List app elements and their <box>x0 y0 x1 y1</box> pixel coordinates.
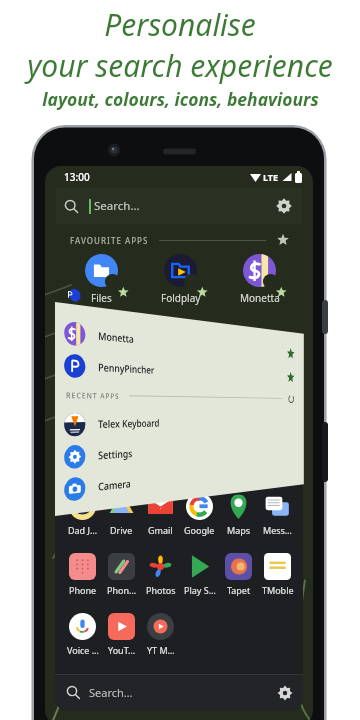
button[interactable]: PennyPincher <box>55 348 304 389</box>
staticText: YouT… <box>108 644 136 656</box>
staticText: Voice … <box>67 644 99 656</box>
button[interactable]: Play S… <box>180 553 219 596</box>
staticText: Settings <box>98 446 132 462</box>
button[interactable]: YouT… <box>102 613 141 656</box>
button[interactable]: Monetta <box>55 315 304 366</box>
button[interactable]: Phon… <box>102 553 141 596</box>
staticText: Photos <box>146 584 176 596</box>
button[interactable]: Google <box>180 493 219 536</box>
staticText: Search… <box>89 685 133 700</box>
button[interactable]: Telex Keyboard <box>55 408 304 441</box>
staticText: Phon… <box>107 584 137 596</box>
staticText: YT M… <box>147 644 175 656</box>
staticText: Phone <box>69 584 97 596</box>
button[interactable]: Search… <box>55 674 303 711</box>
staticText: Dad J… <box>68 524 98 536</box>
staticText: Maps <box>227 524 251 536</box>
button[interactable]: Gmail <box>141 493 180 536</box>
button[interactable]: TMoble <box>258 553 297 596</box>
button[interactable]: Maps <box>219 493 258 536</box>
button[interactable]: Voice … <box>63 613 102 656</box>
other: Refresh <box>288 394 294 404</box>
staticText: Monetta <box>98 328 134 346</box>
staticText: PennyPincher <box>98 360 155 376</box>
staticText: LTE <box>263 171 279 183</box>
button[interactable]: Foldplay <box>141 254 220 305</box>
staticText: Camera <box>98 476 131 493</box>
button[interactable]: Search… <box>56 188 302 224</box>
staticText: Foldplay <box>161 291 201 305</box>
staticText: Telex Keyboard <box>98 416 160 431</box>
button[interactable]: Monetta <box>220 254 299 305</box>
staticText: layout, colours, icons, behaviours <box>42 87 319 111</box>
staticText: Play S… <box>184 584 216 596</box>
staticText: Files <box>91 291 112 305</box>
staticText: FAVOURITE APPS <box>70 235 149 246</box>
button[interactable]: Search settings <box>275 197 293 215</box>
staticText: Tapet <box>227 584 251 596</box>
button[interactable]: YT M… <box>141 613 180 656</box>
button[interactable]: Phone <box>63 553 102 596</box>
staticText: Drive <box>110 524 133 536</box>
button[interactable]: Dad J… <box>63 493 102 536</box>
button[interactable]: Favourites <box>277 234 289 246</box>
staticText: your search experience <box>27 45 333 86</box>
button[interactable]: Tapet <box>219 553 258 596</box>
button[interactable]: Photos <box>141 553 180 596</box>
button[interactable]: Mess… <box>258 493 297 536</box>
button[interactable]: Settings <box>276 684 294 702</box>
button[interactable]: Drive <box>102 493 141 536</box>
button[interactable]: Camera <box>55 455 304 507</box>
staticText: Gmail <box>148 524 173 536</box>
staticText: 13:00 <box>64 170 90 184</box>
staticText: TMoble <box>262 584 294 596</box>
staticText: Search… <box>94 198 140 214</box>
staticText: Google <box>184 524 215 536</box>
staticText: Mess… <box>263 524 292 536</box>
staticText: Personalise <box>104 4 256 45</box>
staticText: Monetta <box>240 291 280 305</box>
button[interactable]: Settings <box>55 431 304 474</box>
staticText: RECENT APPS <box>66 389 120 401</box>
button[interactable]: Files <box>62 254 141 305</box>
